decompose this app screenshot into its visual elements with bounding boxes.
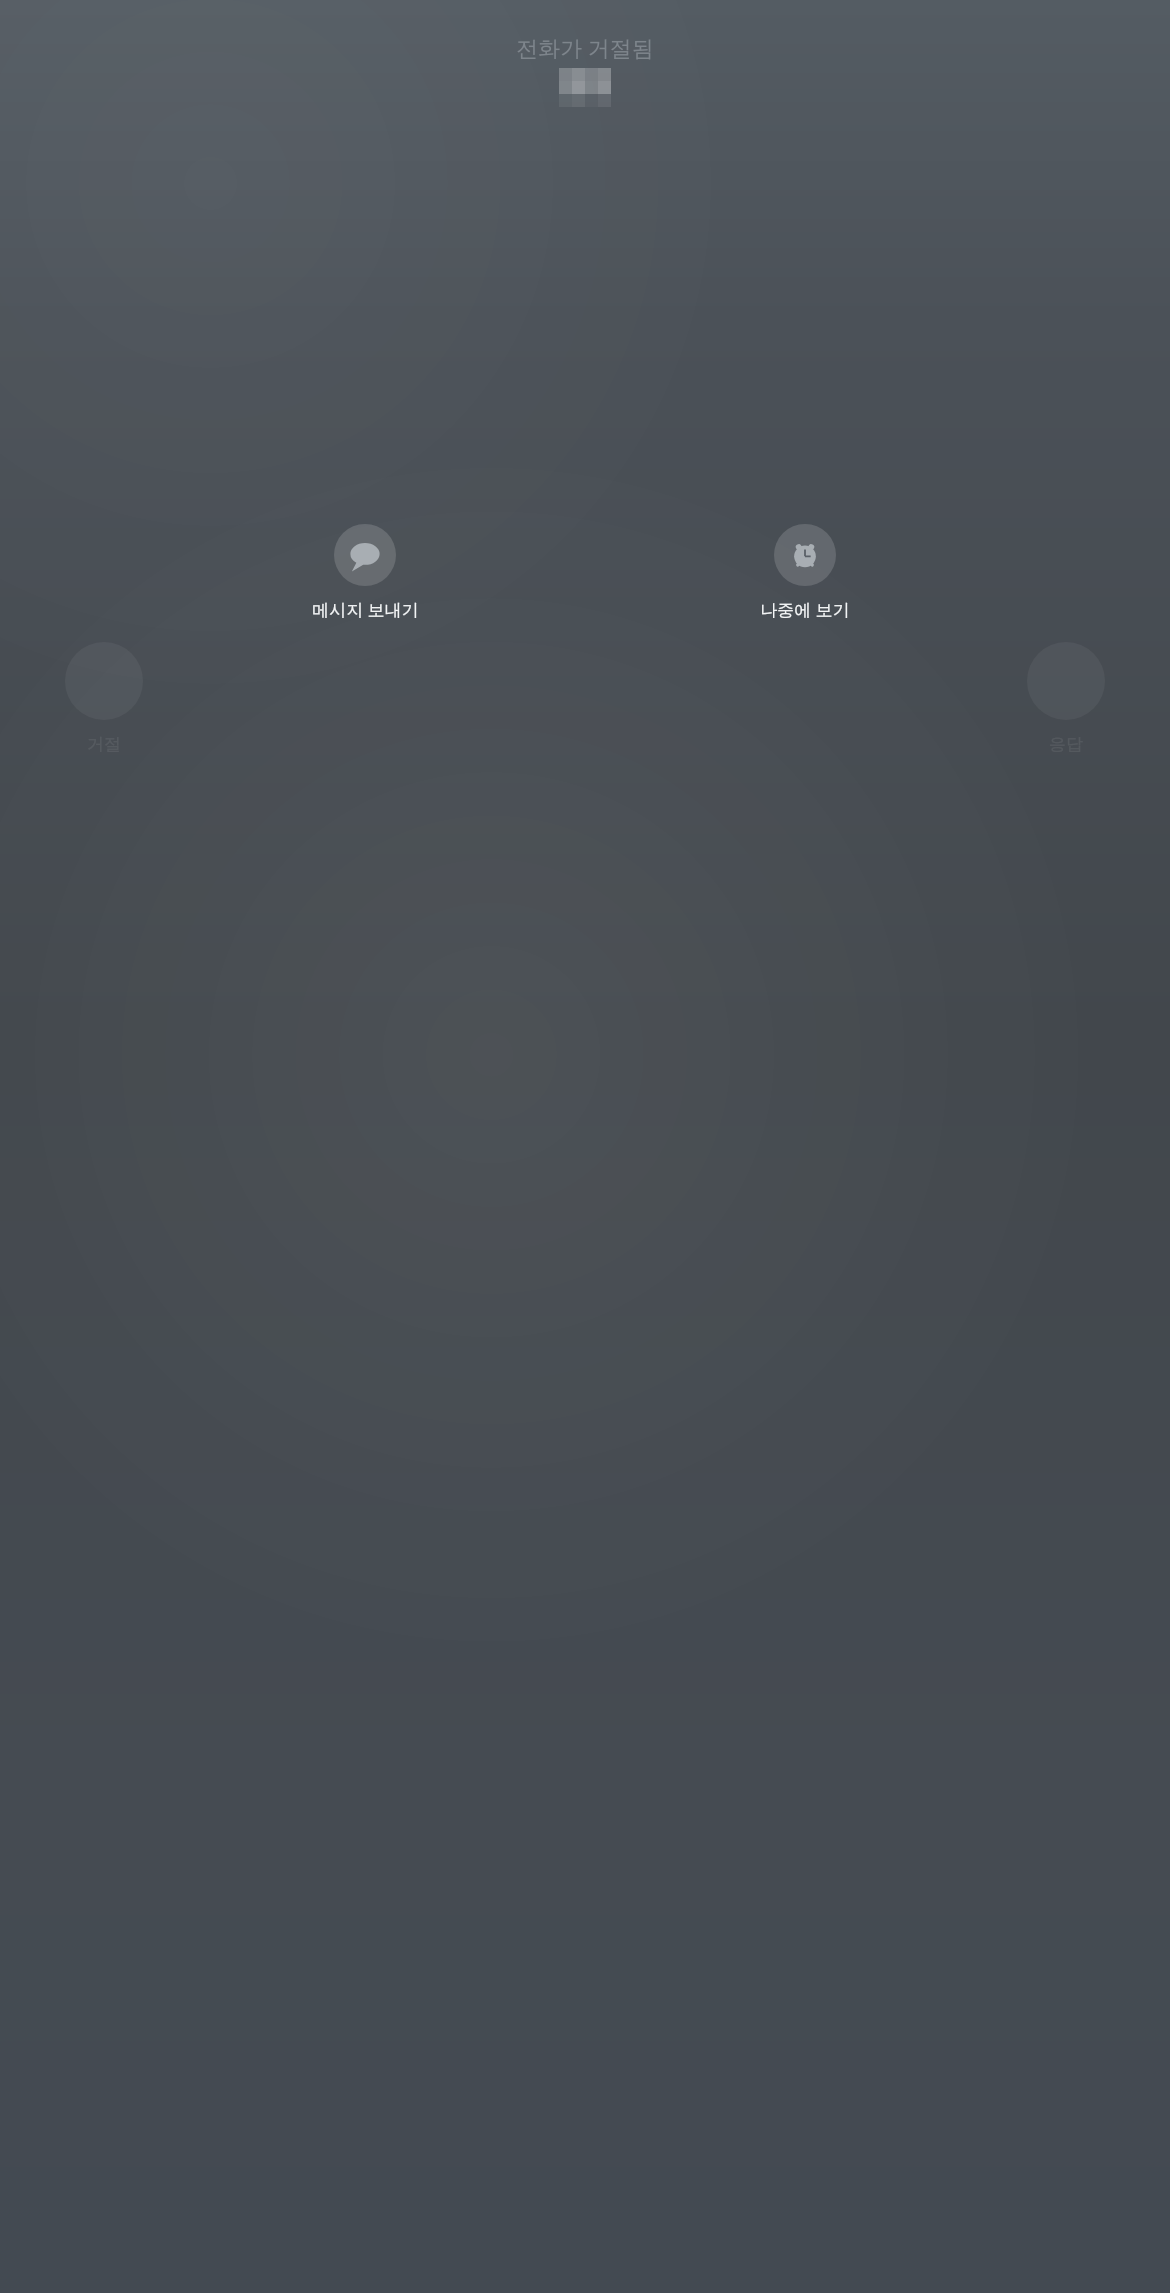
button[interactable]: 나중에 보기 [730,522,880,623]
staticText: 거절 [87,734,121,755]
staticText: 전화가 거절됨 [516,32,654,62]
staticText: 응답 [1049,734,1083,755]
button[interactable]: 메시지 보내기 [290,522,440,623]
staticText: 메시지 보내기 [312,598,419,621]
staticText: 나중에 보기 [760,598,850,621]
button[interactable]: 거절 [14,642,194,755]
button[interactable]: 응답 [976,642,1156,755]
